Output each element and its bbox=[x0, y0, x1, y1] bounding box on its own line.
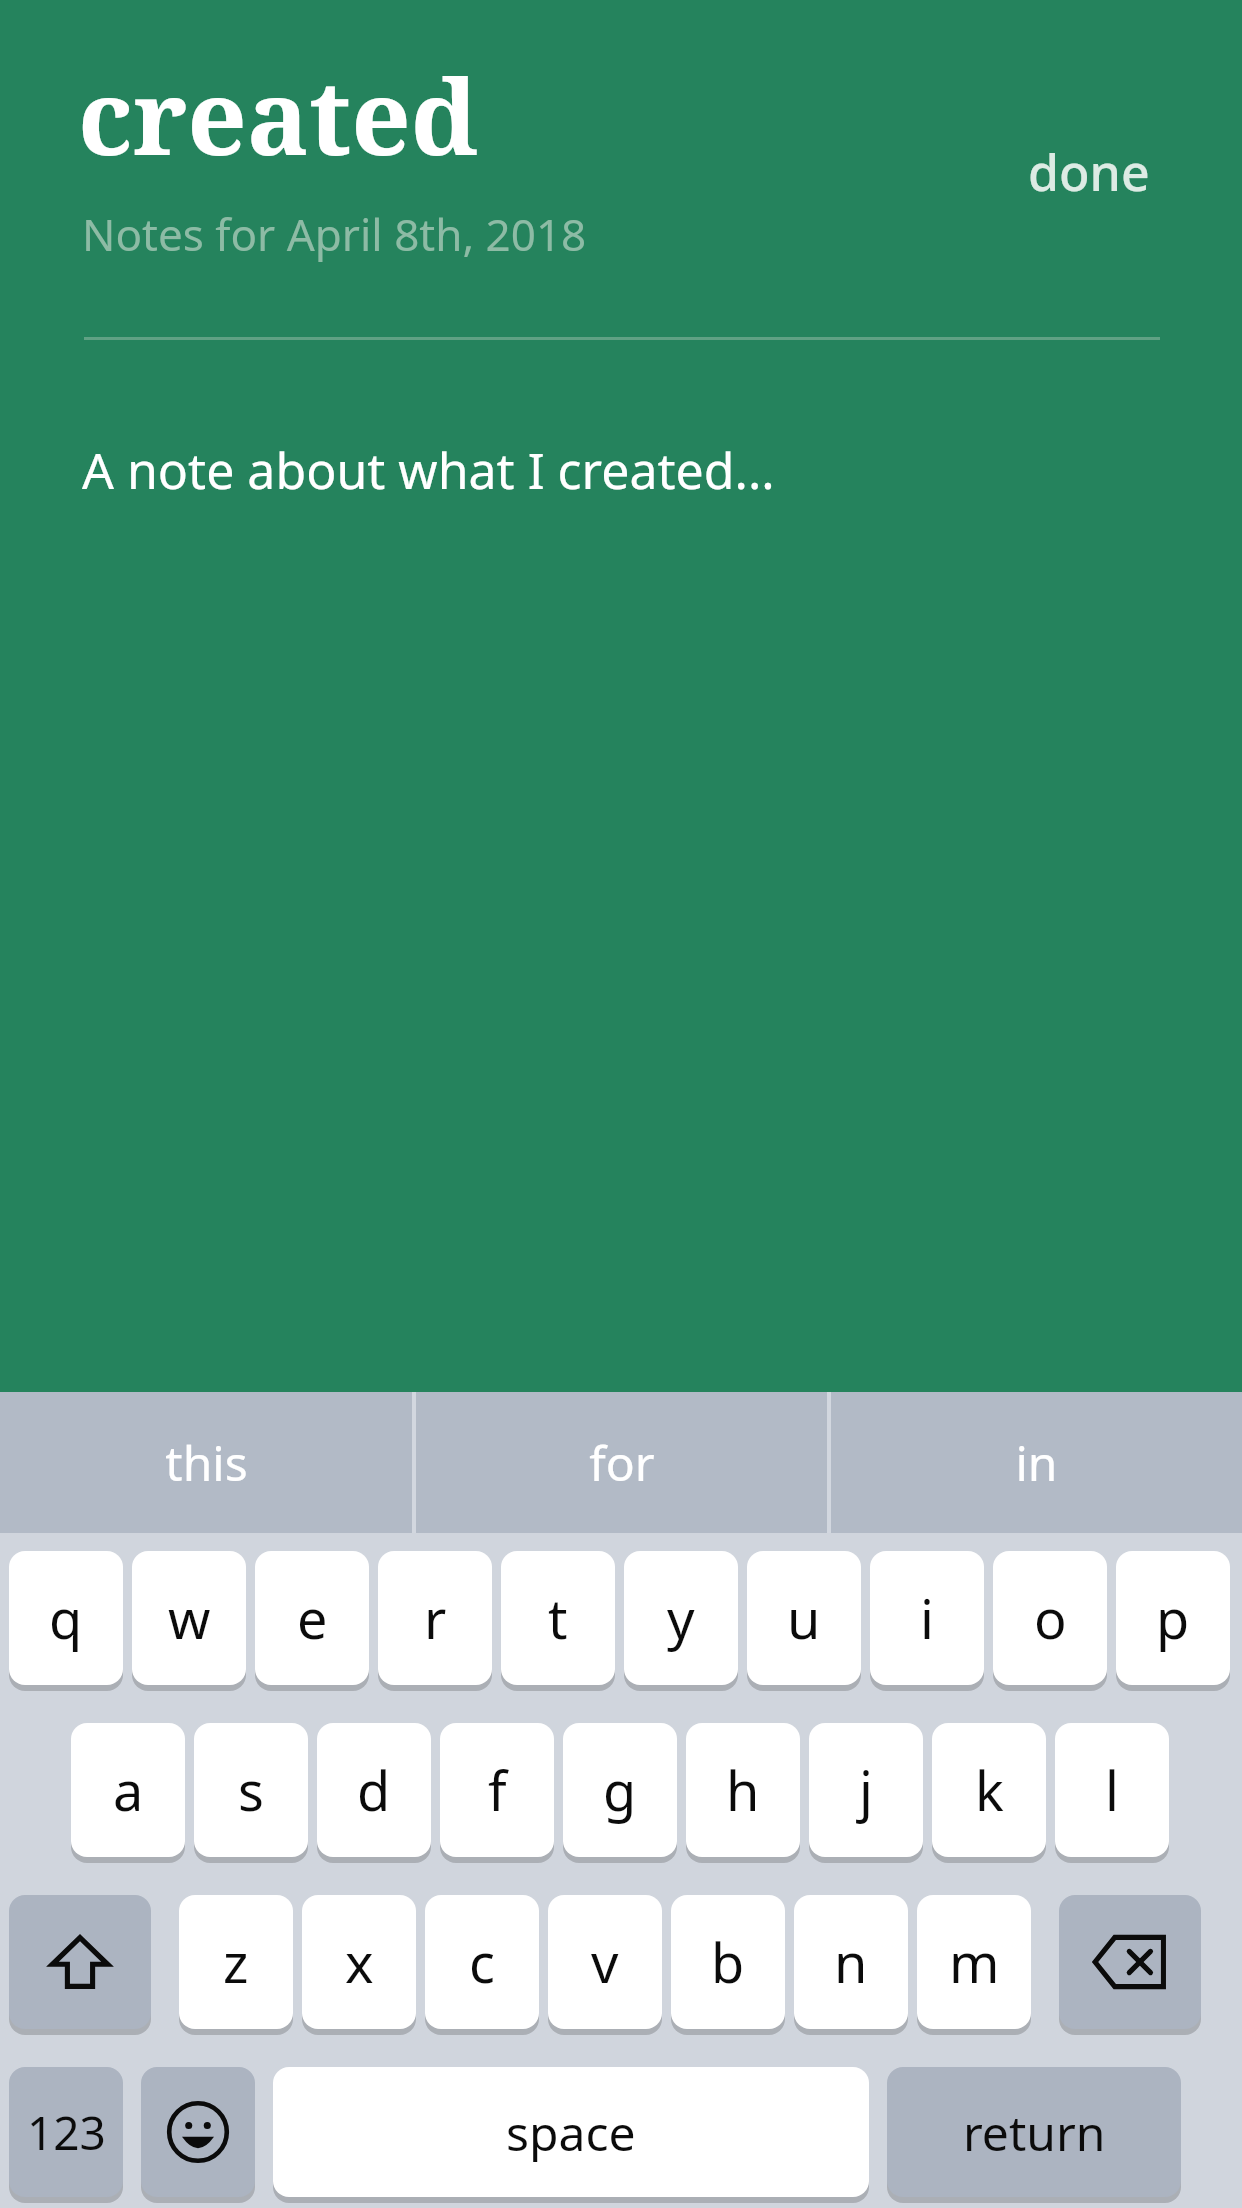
button[interactable]: i bbox=[870, 1551, 984, 1685]
staticText: i bbox=[920, 1581, 934, 1655]
staticText: g bbox=[603, 1753, 637, 1827]
staticText: A note about what I created... bbox=[82, 436, 775, 504]
button[interactable]: d bbox=[317, 1723, 431, 1857]
button[interactable]: space bbox=[273, 2067, 869, 2197]
staticText: e bbox=[297, 1581, 328, 1655]
staticText: k bbox=[975, 1753, 1004, 1827]
staticText: p bbox=[1156, 1581, 1190, 1655]
staticText: Notes for April 8th, 2018 bbox=[82, 204, 587, 264]
button[interactable]: o bbox=[993, 1551, 1107, 1685]
button[interactable]: for bbox=[416, 1392, 827, 1533]
staticText: l bbox=[1105, 1753, 1119, 1827]
staticText: s bbox=[238, 1753, 264, 1827]
button[interactable]: Shift bbox=[9, 1895, 151, 2029]
staticText: w bbox=[168, 1581, 211, 1655]
button[interactable]: w bbox=[132, 1551, 246, 1685]
button[interactable]: l bbox=[1055, 1723, 1169, 1857]
button[interactable]: n bbox=[794, 1895, 908, 2029]
staticText: t bbox=[548, 1581, 568, 1655]
button[interactable]: t bbox=[501, 1551, 615, 1685]
button[interactable]: u bbox=[747, 1551, 861, 1685]
button[interactable]: done bbox=[1008, 126, 1170, 218]
button[interactable]: q bbox=[9, 1551, 123, 1685]
staticText: return bbox=[963, 2100, 1106, 2165]
staticText: u bbox=[787, 1581, 821, 1655]
button[interactable]: f bbox=[440, 1723, 554, 1857]
button[interactable]: r bbox=[378, 1551, 492, 1685]
staticText: z bbox=[223, 1925, 249, 1999]
button[interactable]: a bbox=[71, 1723, 185, 1857]
button[interactable]: in bbox=[831, 1392, 1242, 1533]
staticText: created bbox=[78, 44, 479, 186]
button[interactable]: c bbox=[425, 1895, 539, 2029]
staticText: c bbox=[469, 1925, 495, 1999]
staticText: h bbox=[726, 1753, 760, 1827]
button[interactable]: k bbox=[932, 1723, 1046, 1857]
button[interactable]: z bbox=[179, 1895, 293, 2029]
staticText: y bbox=[667, 1581, 695, 1655]
staticText: a bbox=[113, 1753, 144, 1827]
staticText: j bbox=[859, 1753, 873, 1827]
staticText: 123 bbox=[27, 2101, 106, 2164]
button[interactable]: x bbox=[302, 1895, 416, 2029]
button[interactable]: g bbox=[563, 1723, 677, 1857]
staticText: n bbox=[834, 1925, 868, 1999]
staticText: r bbox=[424, 1581, 447, 1655]
button[interactable]: y bbox=[624, 1551, 738, 1685]
staticText: m bbox=[949, 1925, 1000, 1999]
staticText: b bbox=[711, 1925, 745, 1999]
staticText: q bbox=[49, 1581, 83, 1655]
button[interactable]: 123 bbox=[9, 2067, 123, 2197]
staticText: d bbox=[357, 1753, 391, 1827]
staticText: in bbox=[1015, 1430, 1058, 1495]
button[interactable]: Backspace bbox=[1059, 1895, 1201, 2029]
staticText: space bbox=[506, 2100, 636, 2165]
button[interactable]: return bbox=[887, 2067, 1181, 2197]
button[interactable]: s bbox=[194, 1723, 308, 1857]
staticText: this bbox=[165, 1430, 248, 1495]
staticText: v bbox=[591, 1925, 619, 1999]
button[interactable]: v bbox=[548, 1895, 662, 2029]
button[interactable]: b bbox=[671, 1895, 785, 2029]
staticText: f bbox=[488, 1753, 507, 1827]
button[interactable]: Emoji bbox=[141, 2067, 255, 2197]
button[interactable]: h bbox=[686, 1723, 800, 1857]
staticText: x bbox=[345, 1925, 374, 1999]
button[interactable]: e bbox=[255, 1551, 369, 1685]
button[interactable]: j bbox=[809, 1723, 923, 1857]
staticText: for bbox=[589, 1430, 655, 1495]
staticText: done bbox=[1028, 138, 1150, 206]
button[interactable]: this bbox=[0, 1392, 412, 1533]
staticText: o bbox=[1034, 1581, 1067, 1655]
button[interactable]: m bbox=[917, 1895, 1031, 2029]
button[interactable]: p bbox=[1116, 1551, 1230, 1685]
